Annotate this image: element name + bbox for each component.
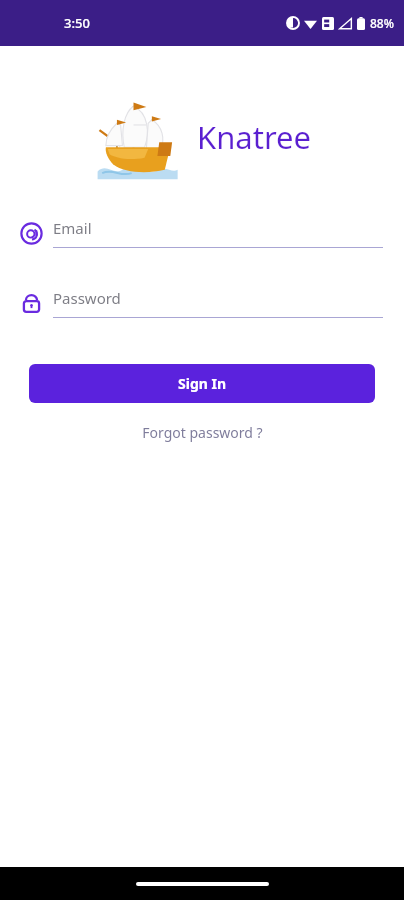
other: Password — [19, 291, 44, 316]
staticText: Password — [53, 288, 121, 308]
staticText: Knatree — [197, 116, 312, 158]
button[interactable]: Forgot password ? — [130, 417, 275, 448]
button[interactable]: Password — [0, 288, 404, 318]
button[interactable]: Email — [0, 218, 404, 248]
staticText: Email — [53, 218, 92, 238]
staticText: Sign In — [178, 374, 227, 393]
other: Email — [19, 221, 44, 246]
staticText: 88% — [370, 15, 394, 31]
staticText: 3:50 — [64, 14, 90, 32]
button[interactable]: Sign In — [29, 364, 375, 403]
staticText: Forgot password ? — [142, 423, 263, 442]
